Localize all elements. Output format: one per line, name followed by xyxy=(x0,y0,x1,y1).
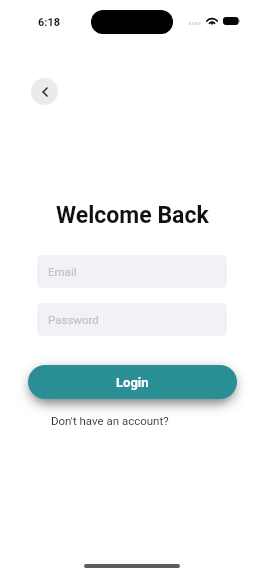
button[interactable]: Don't have an account? xyxy=(51,414,169,427)
staticText: Password xyxy=(48,313,99,326)
staticText: Login xyxy=(116,375,149,390)
button[interactable]: Back xyxy=(31,78,58,105)
button[interactable]: Email xyxy=(37,255,227,288)
staticText: 6:18 xyxy=(38,16,61,29)
button[interactable]: Login xyxy=(28,365,237,399)
staticText: Email xyxy=(48,265,77,278)
staticText: Welcome Back xyxy=(56,202,209,229)
button[interactable]: Password xyxy=(37,303,227,336)
